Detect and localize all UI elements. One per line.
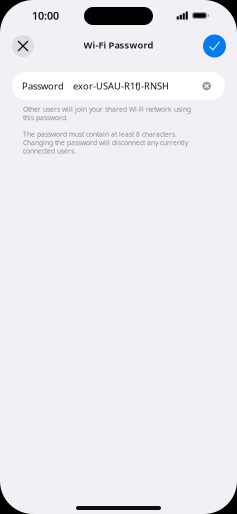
staticText: Other users will join your shared Wi-Fi … — [23, 105, 191, 122]
button[interactable]: Done — [203, 34, 226, 57]
button[interactable]: Clear text — [202, 82, 211, 90]
staticText: exor-USAU-R1fJ-RNSH — [73, 80, 169, 92]
button[interactable]: Cancel — [12, 35, 34, 57]
staticText: 10:00 — [32, 8, 59, 23]
staticText: The password must contain at least 8 cha… — [23, 130, 188, 155]
staticText: Wi-Fi Password — [83, 39, 153, 51]
staticText: Password — [22, 80, 64, 92]
